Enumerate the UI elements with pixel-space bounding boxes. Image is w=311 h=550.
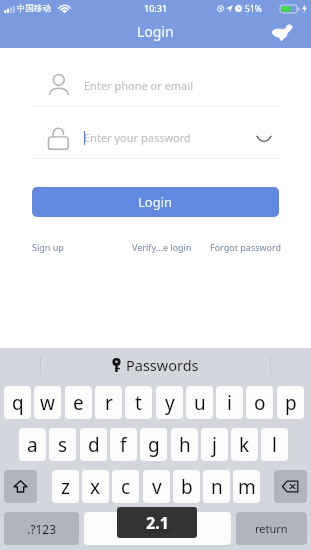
staticText: .?123: [27, 521, 57, 537]
button[interactable]: Login: [32, 187, 279, 217]
staticText: a: [27, 432, 38, 458]
staticText: m: [238, 474, 256, 500]
staticText: k: [239, 432, 250, 458]
staticText: v: [152, 474, 162, 500]
button[interactable]: Passwords: [112, 355, 199, 375]
button[interactable]: Backspace: [274, 470, 307, 503]
button[interactable]: r: [95, 386, 122, 419]
button[interactable]: l: [261, 428, 288, 461]
button[interactable]: g: [140, 428, 167, 461]
button[interactable]: a: [19, 428, 46, 461]
button[interactable]: k: [231, 428, 258, 461]
button[interactable]: Enter phone or email: [32, 72, 280, 106]
button[interactable]: s: [49, 428, 76, 461]
staticText: Sign up: [32, 241, 64, 253]
button[interactable]: Verify...e login: [132, 241, 192, 253]
staticText: Verify...e login: [132, 241, 192, 253]
staticText: r: [105, 390, 113, 416]
button[interactable]: x: [82, 470, 109, 503]
staticText: u: [194, 390, 206, 416]
button[interactable]: i: [216, 386, 243, 419]
staticText: i: [227, 390, 232, 416]
button[interactable]: Shift: [4, 470, 37, 503]
staticText: space: [143, 521, 173, 536]
staticText: x: [90, 474, 101, 500]
staticText: w: [40, 390, 55, 416]
staticText: Enter your password: [84, 130, 191, 145]
button[interactable]: Enter your password: [32, 124, 280, 158]
staticText: q: [12, 390, 24, 416]
staticText: f: [120, 432, 127, 458]
staticText: t: [135, 390, 142, 416]
staticText: Login: [137, 22, 174, 41]
button[interactable]: j: [201, 428, 228, 461]
staticText: l: [272, 432, 277, 458]
button[interactable]: p: [277, 386, 304, 419]
button[interactable]: b: [173, 470, 200, 503]
button[interactable]: v: [143, 470, 170, 503]
staticText: Forgot password: [210, 241, 282, 253]
staticText: s: [58, 432, 68, 458]
button[interactable]: w: [34, 386, 61, 419]
staticText: space: [143, 521, 173, 536]
button[interactable]: h: [171, 428, 198, 461]
button[interactable]: y: [156, 386, 183, 419]
button[interactable]: return: [236, 512, 307, 545]
staticText: y: [165, 390, 175, 416]
button[interactable]: .?123: [4, 512, 79, 545]
button[interactable]: n: [203, 470, 230, 503]
staticText: p: [285, 390, 297, 416]
staticText: 10:31: [144, 2, 168, 14]
staticText: o: [254, 390, 266, 416]
staticText: j: [212, 432, 217, 458]
button[interactable]: u: [186, 386, 213, 419]
staticText: Passwords: [126, 355, 199, 375]
staticText: return: [255, 521, 288, 536]
staticText: 2.1: [146, 512, 169, 534]
button[interactable]: q: [4, 386, 31, 419]
staticText: Enter phone or email: [84, 78, 193, 93]
staticText: g: [148, 432, 160, 458]
button[interactable]: m: [233, 470, 260, 503]
button[interactable]: c: [112, 470, 139, 503]
staticText: 中国移动: [17, 3, 51, 14]
staticText: n: [211, 474, 223, 500]
button[interactable]: e: [65, 386, 92, 419]
staticText: c: [121, 474, 131, 500]
button[interactable]: d: [80, 428, 107, 461]
button[interactable]: o: [246, 386, 273, 419]
staticText: h: [179, 432, 191, 458]
button[interactable]: f: [110, 428, 137, 461]
staticText: d: [88, 432, 100, 458]
staticText: b: [181, 474, 193, 500]
button[interactable]: Sign up: [32, 241, 64, 253]
button[interactable]: z: [52, 470, 79, 503]
staticText: 51%: [245, 3, 262, 15]
button[interactable]: Logo: [271, 23, 294, 43]
button[interactable]: t: [125, 386, 152, 419]
staticText: e: [73, 390, 84, 416]
staticText: z: [61, 474, 70, 500]
button[interactable]: Forgot password: [210, 241, 282, 253]
staticText: Login: [138, 193, 173, 211]
button[interactable]: space: [84, 512, 231, 545]
button[interactable]: Show password: [254, 128, 274, 148]
